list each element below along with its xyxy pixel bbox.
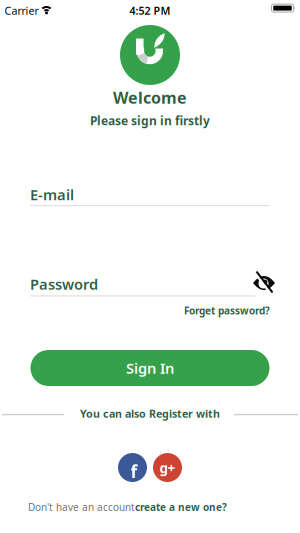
button[interactable]: create a new one? [135,500,227,514]
button[interactable]: Forget password? [184,304,270,317]
staticText: E-mail [30,185,74,204]
staticText: create a new one? [135,500,227,514]
staticText: f [130,460,137,483]
button[interactable]: Sign In [30,350,269,386]
staticText: You can also Register with [80,406,220,421]
staticText: Forget password? [184,304,270,317]
staticText: g+ [159,459,175,477]
staticText: Welcome [113,87,187,108]
staticText: Don't have an account [28,500,135,514]
staticText: Please sign in firstly [90,112,210,128]
staticText: 4:52 PM [129,3,170,18]
button[interactable]: Show password [249,268,279,298]
staticText: Password [30,274,98,294]
button[interactable]: Register with Facebook [118,453,147,482]
button[interactable]: Register with Google [153,453,182,482]
staticText: Sign In [126,358,174,378]
staticText: Carrier [4,3,38,18]
